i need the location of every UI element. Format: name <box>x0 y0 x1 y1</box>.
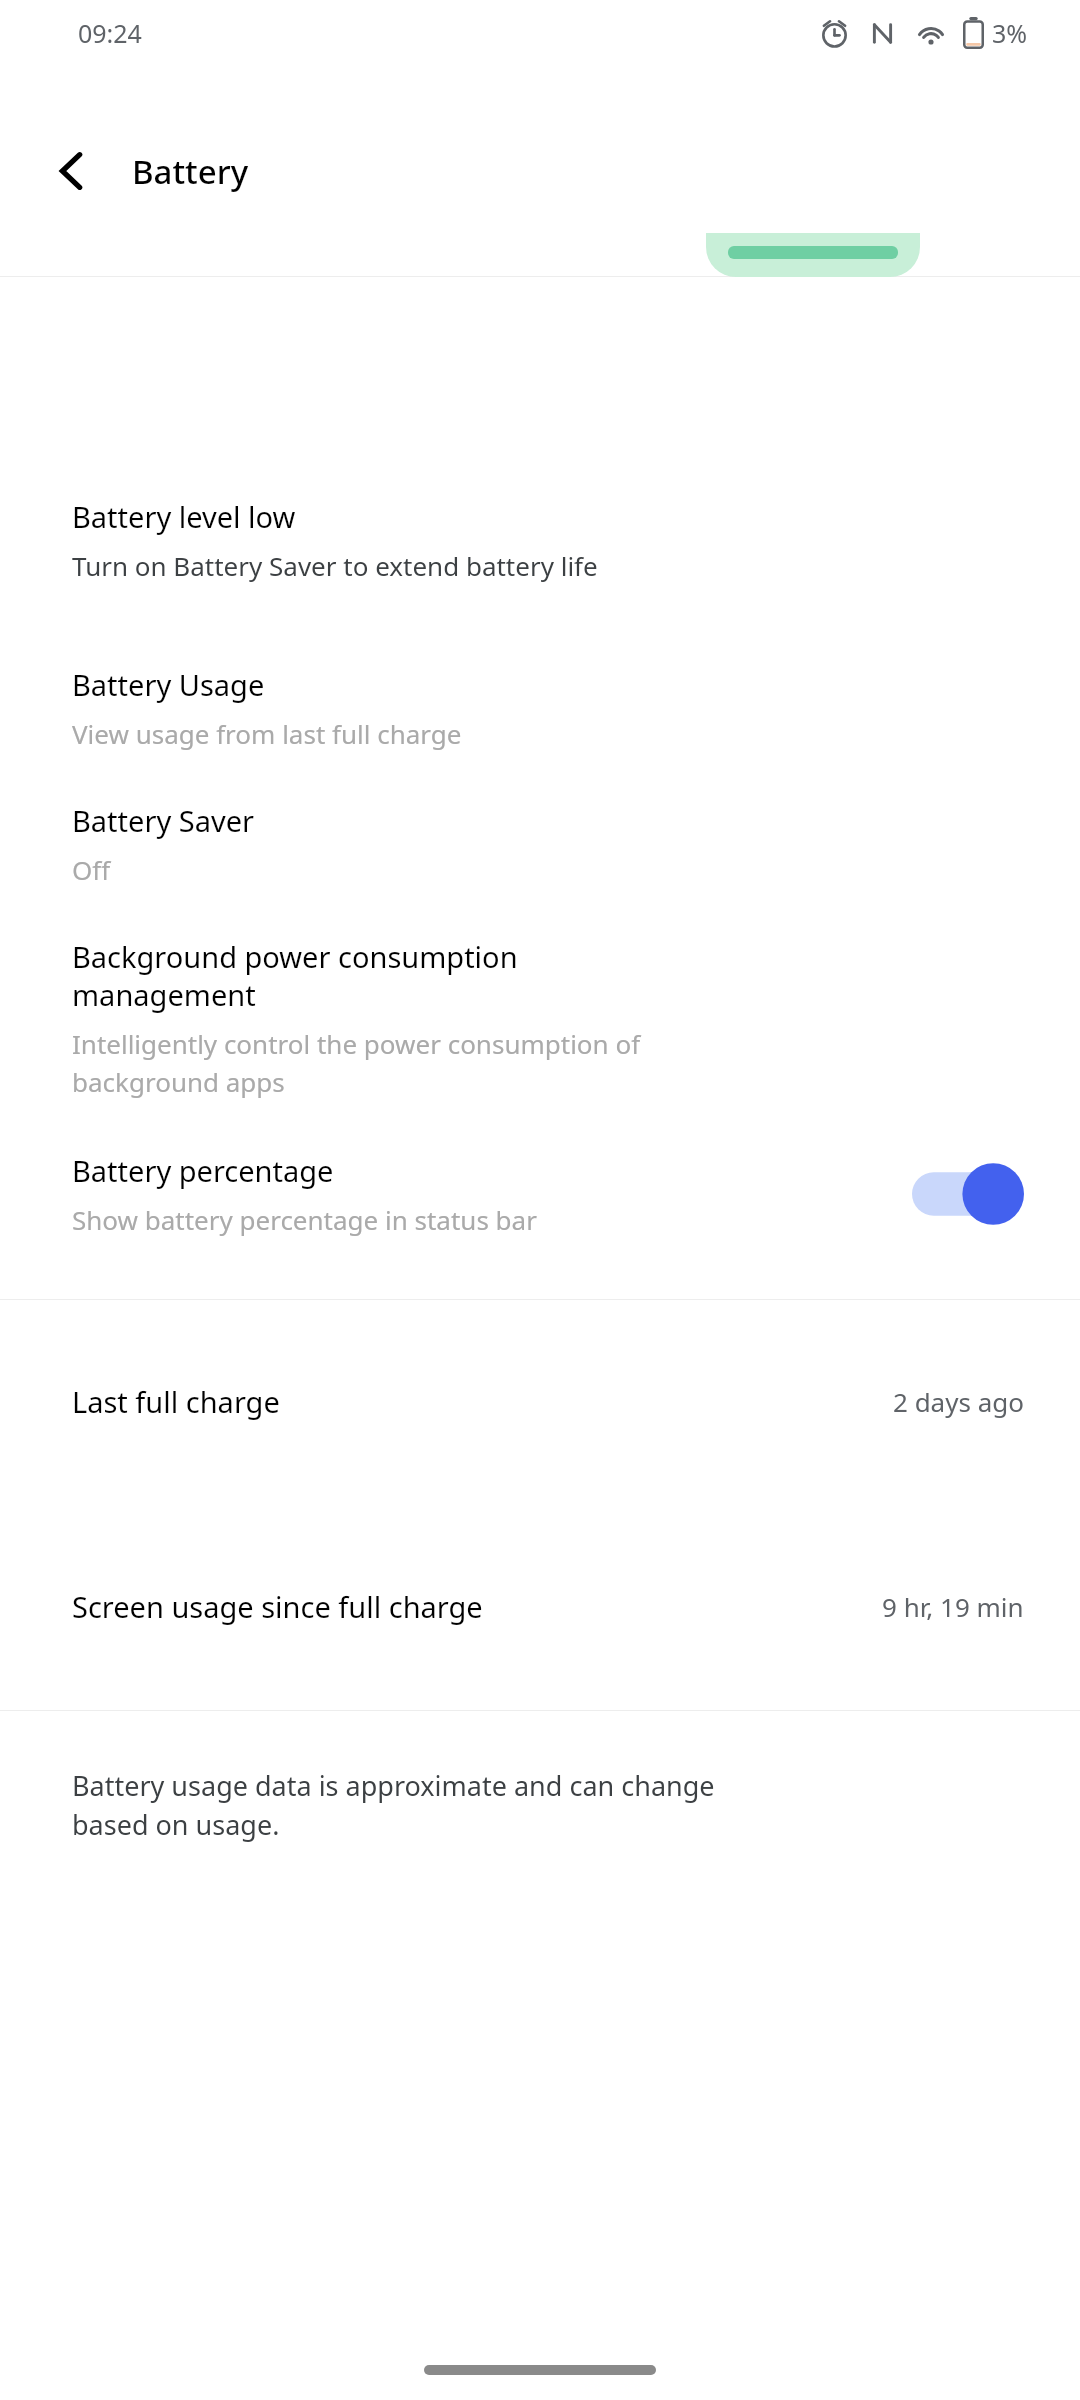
staticText: 3% <box>992 16 1028 50</box>
staticText: Battery <box>132 149 249 194</box>
staticText: 9 hr, 19 min <box>882 1589 1024 1624</box>
button[interactable]: Battery level low <box>0 493 1080 587</box>
staticText: Screen usage since full charge <box>72 1587 483 1626</box>
staticText: Battery percentage <box>72 1151 334 1190</box>
staticText: Battery level low <box>72 497 296 536</box>
staticText: Battery Usage <box>72 665 265 704</box>
staticText: 09:24 <box>78 16 142 50</box>
staticText: Intelligently control the power consumpt… <box>72 1026 641 1099</box>
staticText: Battery Saver <box>72 801 254 840</box>
button[interactable]: Battery Saver <box>0 797 1080 891</box>
button[interactable]: Screen usage since full charge <box>0 1502 1080 1710</box>
button[interactable]: Battery percentage <box>0 1143 1080 1245</box>
button[interactable]: Back <box>34 133 110 209</box>
staticText: View usage from last full charge <box>72 716 462 751</box>
button[interactable]: Battery Usage <box>0 661 1080 755</box>
staticText: Background power consumption management <box>72 937 518 1014</box>
button[interactable]: Last full charge <box>0 1300 1080 1502</box>
staticText: Battery usage data is approximate and ca… <box>72 1767 715 1843</box>
staticText: Off <box>72 852 111 887</box>
button[interactable]: Battery percentage toggle <box>912 1159 1024 1229</box>
staticText: Turn on Battery Saver to extend battery … <box>72 548 598 583</box>
staticText: Last full charge <box>72 1382 280 1421</box>
staticText: 2 days ago <box>893 1384 1024 1419</box>
staticText: Show battery percentage in status bar <box>72 1202 537 1237</box>
button[interactable]: Background power consumption management <box>0 933 1080 1103</box>
